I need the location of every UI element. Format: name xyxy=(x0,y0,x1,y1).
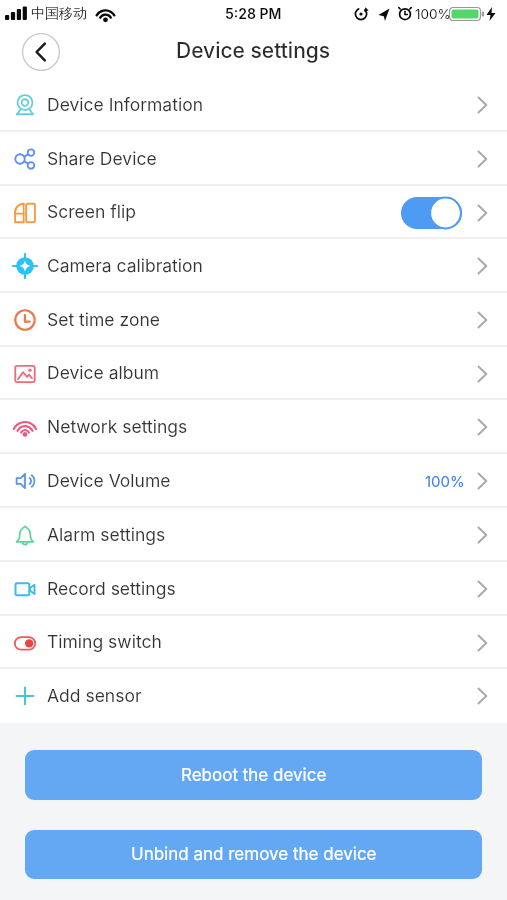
button[interactable]: Record settings xyxy=(0,562,507,616)
staticText: Screen flip xyxy=(47,201,136,222)
staticText: 100% xyxy=(415,6,451,22)
staticText: Camera calibration xyxy=(47,255,203,276)
staticText: Set time zone xyxy=(47,309,160,330)
button[interactable] xyxy=(22,33,60,71)
button[interactable]: Set time zone xyxy=(0,293,507,347)
staticText: 100% xyxy=(425,472,465,490)
staticText: Network settings xyxy=(47,416,188,437)
button[interactable]: Share Device xyxy=(0,132,507,186)
button[interactable]: Add sensor xyxy=(0,669,507,723)
staticText: Timing switch xyxy=(47,631,162,652)
staticText: Add sensor xyxy=(47,685,142,706)
staticText: Share Device xyxy=(47,148,157,169)
button[interactable]: Device album xyxy=(0,347,507,400)
button[interactable]: Reboot the device xyxy=(25,750,482,800)
button[interactable]: Device Information xyxy=(0,78,507,132)
button[interactable]: Screen flip xyxy=(0,186,507,239)
staticText: Device settings xyxy=(176,38,331,63)
staticText: Device Information xyxy=(47,94,203,115)
staticText: Device Volume xyxy=(47,470,171,491)
staticText: Alarm settings xyxy=(47,524,166,545)
button[interactable]: Device Volume xyxy=(0,454,507,508)
staticText: Record settings xyxy=(47,578,176,599)
staticText: 5:28 PM xyxy=(225,5,282,22)
button[interactable]: Network settings xyxy=(0,400,507,454)
button[interactable]: Timing switch xyxy=(0,616,507,669)
staticText: 中国移动 xyxy=(31,5,87,23)
staticText: Unbind and remove the device xyxy=(131,844,377,865)
button[interactable]: Alarm settings xyxy=(0,508,507,562)
button[interactable]: Camera calibration xyxy=(0,239,507,293)
staticText: Device album xyxy=(47,362,160,383)
button[interactable]: Unbind and remove the device xyxy=(25,830,482,879)
staticText: Reboot the device xyxy=(181,765,327,786)
